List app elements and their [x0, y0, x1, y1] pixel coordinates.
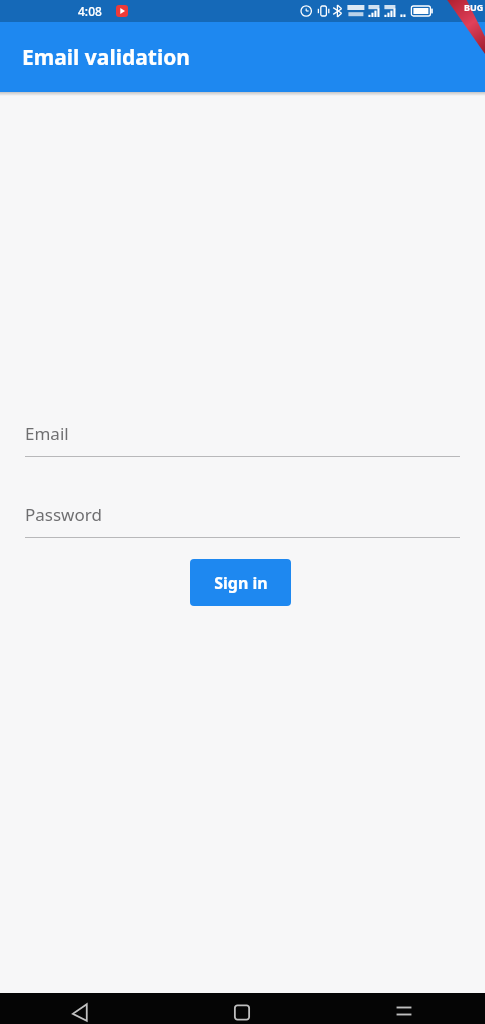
staticText: Email validation [22, 43, 190, 72]
staticText: Email [25, 422, 69, 445]
staticText: Sign in [214, 572, 268, 594]
button[interactable]: Password [25, 492, 460, 538]
button[interactable]: Home [225, 1001, 259, 1024]
button[interactable]: Sign in [190, 559, 291, 606]
staticText: BUG [464, 1, 484, 13]
button[interactable]: Back [64, 1001, 98, 1024]
button[interactable]: Email [25, 411, 460, 457]
staticText: 4:08 [78, 3, 102, 19]
button[interactable]: Recent apps [387, 1001, 421, 1024]
staticText: Password [25, 503, 102, 526]
